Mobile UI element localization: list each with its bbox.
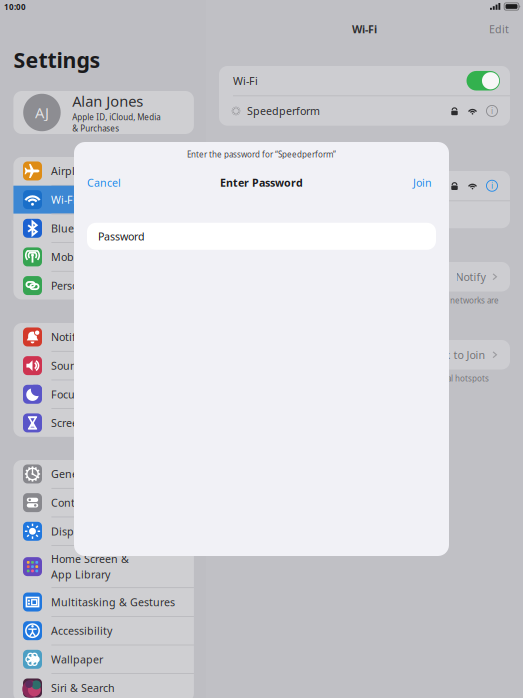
staticText: Bluetooth	[51, 221, 101, 235]
staticText: AJ	[35, 103, 49, 122]
button[interactable]: Bluetooth	[13, 214, 194, 242]
button[interactable]: Kimfly	[219, 171, 510, 200]
staticText: OTHER NETWORKS	[233, 154, 293, 163]
staticText: Airplane Mode	[51, 164, 126, 178]
button[interactable]: Sounds	[13, 352, 194, 379]
staticText: General	[51, 467, 91, 481]
staticText: Settings	[13, 45, 100, 74]
staticText: Wi-Fi	[233, 74, 258, 88]
staticText: Screen Time	[51, 416, 113, 430]
staticText: Home Screen &	[51, 552, 129, 566]
staticText: i	[491, 180, 493, 191]
button[interactable]: Speedperform	[219, 96, 510, 126]
button[interactable]: Notifications	[13, 323, 194, 351]
button[interactable]: Cancel	[74, 176, 121, 190]
staticText: Display & Brightness	[51, 524, 157, 538]
button[interactable]: Airplane Mode	[13, 157, 194, 185]
staticText: Cancel	[87, 176, 121, 190]
button[interactable]: Mobile Data	[13, 243, 194, 271]
staticText: Personal Hotspot	[51, 278, 137, 293]
button[interactable]: Password	[87, 223, 436, 250]
staticText: Enter Password	[220, 176, 303, 190]
button[interactable]: Join	[413, 176, 449, 190]
staticText: Focus	[51, 387, 80, 401]
staticText: Accessibility	[51, 624, 112, 638]
button[interactable]: Edit	[469, 21, 509, 37]
button[interactable]: Multitasking & Gestures	[13, 588, 194, 616]
button[interactable]: Focus	[13, 380, 194, 408]
staticText: Wi-Fi	[51, 192, 76, 207]
button[interactable]: Screen Time	[13, 409, 194, 437]
button[interactable]: Ask to Join Networks	[219, 262, 510, 291]
staticText: Alan Jones	[72, 91, 143, 111]
staticText: Edit	[489, 22, 509, 36]
staticText: App Library	[51, 567, 110, 582]
button[interactable]: Personal Hotspot	[13, 272, 194, 299]
staticText: Speedperform	[247, 104, 320, 118]
staticText: i	[491, 106, 493, 116]
staticText: Multitasking & Gestures	[51, 595, 175, 609]
staticText: Wi-Fi	[352, 22, 377, 36]
staticText: Apple ID, iCloud, Media	[72, 112, 160, 122]
staticText: Enter the password for “Speedperform”	[187, 149, 336, 160]
staticText: Mobile Data	[51, 250, 113, 264]
staticText: Join	[413, 176, 432, 190]
button[interactable]: Siri & Search	[13, 674, 194, 698]
button[interactable]: AJ	[13, 91, 194, 134]
staticText: Notify	[455, 270, 485, 284]
staticText: Control Centre	[51, 495, 125, 510]
staticText: Wallpaper	[51, 652, 103, 666]
button[interactable]: Accessibility	[13, 617, 194, 645]
button[interactable]: Control Centre	[13, 489, 194, 516]
button[interactable]: Auto-Join Hotspot	[219, 340, 510, 369]
button[interactable]: General	[13, 460, 194, 488]
button[interactable]: Wi-Fi	[219, 66, 510, 95]
staticText: Kimfly	[233, 179, 264, 193]
button[interactable]: Wi-Fi	[13, 186, 194, 214]
button[interactable]: Wallpaper	[13, 645, 194, 673]
button[interactable]: Home Screen &	[13, 546, 194, 587]
staticText: Allow this device to automatically disco…	[233, 373, 489, 394]
button[interactable]: Other…	[219, 201, 510, 228]
staticText: & Purchases	[72, 123, 119, 134]
staticText: 10:00	[4, 1, 26, 12]
staticText: Siri & Search	[51, 681, 115, 695]
staticText: Known networks will be joined automatica…	[233, 295, 499, 316]
staticText: Notifications	[51, 330, 114, 344]
staticText: Sounds	[51, 358, 89, 373]
staticText: Ask to Join	[432, 348, 485, 362]
staticText: Password	[98, 229, 145, 243]
button[interactable]: Display & Brightness	[13, 517, 194, 545]
